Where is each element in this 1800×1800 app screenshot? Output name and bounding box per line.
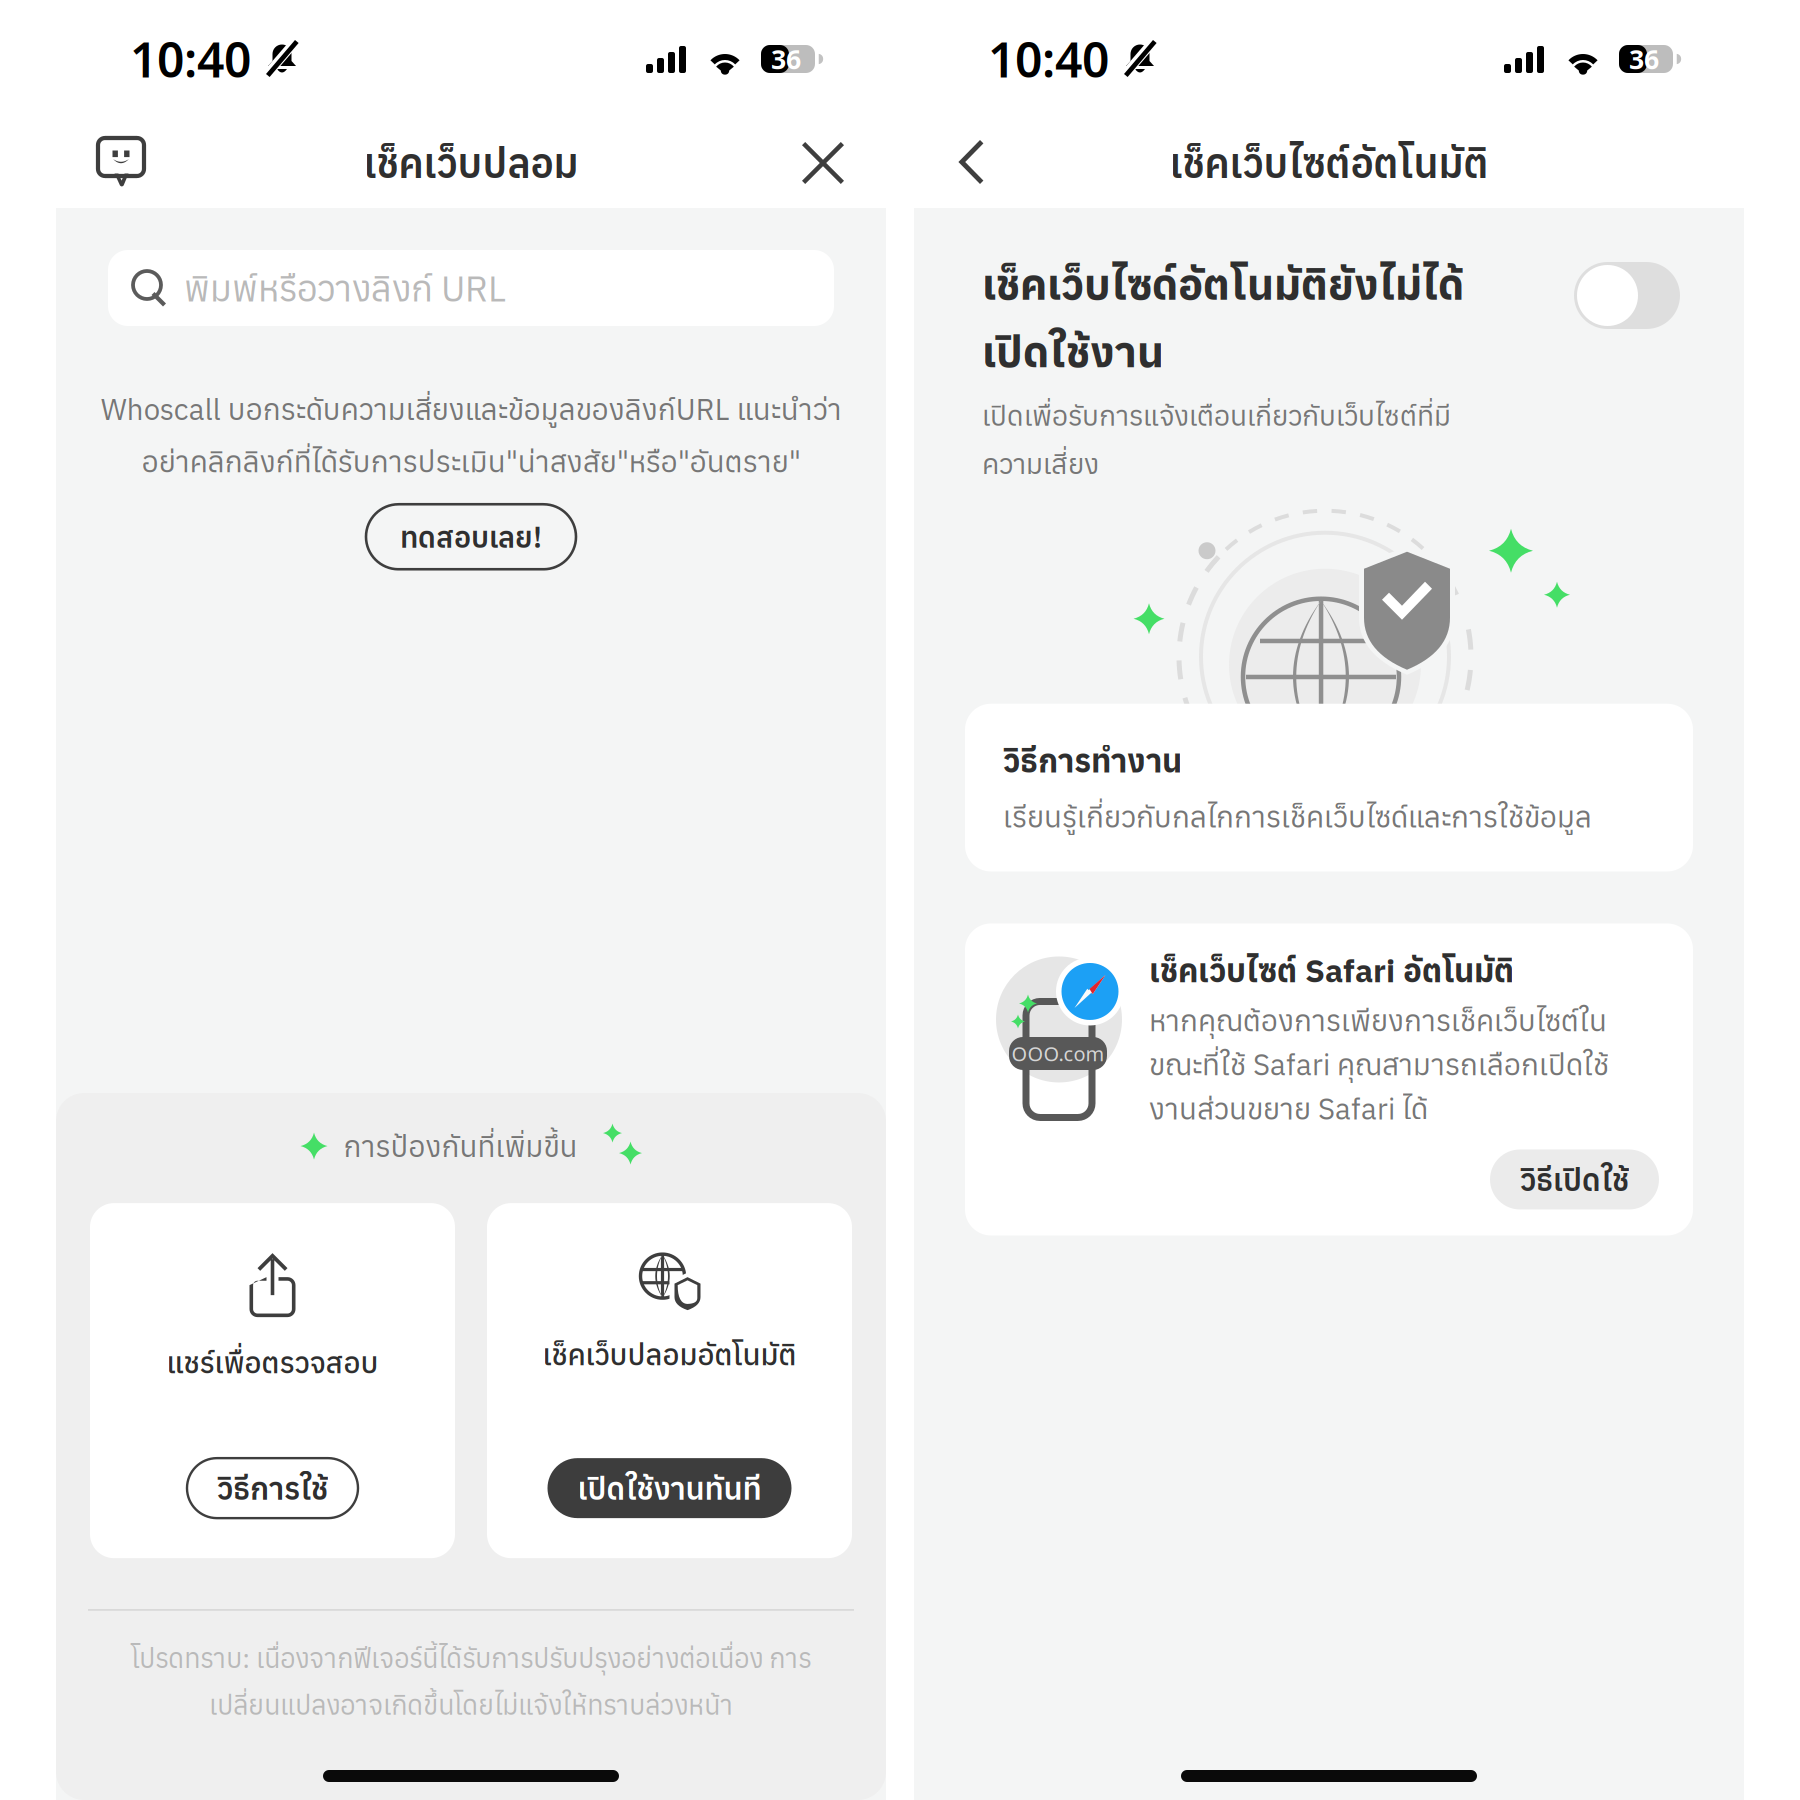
button[interactable]: ทดสอบเลย! (366, 504, 576, 569)
staticText: 36 (771, 41, 801, 77)
staticText: ทดสอบเลย! (400, 518, 542, 556)
staticText: เช็คเว็บไซต์ Safari อัตโนมัติ (1149, 949, 1514, 991)
staticText: พิมพ์หรือวางลิงก์ URL (184, 265, 506, 311)
staticText: วิธีการใช้ (217, 1468, 328, 1508)
button[interactable]: เช็คเว็บปลอมอัตโนมัติ (487, 1203, 852, 1558)
staticText: 10:40 (988, 27, 1109, 91)
staticText: วิธีการทำงาน (1003, 740, 1182, 781)
button[interactable]: Back (948, 134, 996, 192)
staticText: หากคุณต้องการเพียงการเช็คเว็บไซต์ใน ขณะท… (1149, 1001, 1609, 1127)
staticText: เช็คเว็บปลอมอัตโนมัติ (542, 1335, 796, 1373)
staticText: เช็คเว็บไซด์อัตโนมัติยังไม่ได้ เปิดใช้งา… (982, 256, 1464, 379)
staticText: วิธีเปิดใช้ (1520, 1159, 1629, 1199)
staticText: 36 (1629, 41, 1659, 77)
button[interactable]: Enable automatic website check (1574, 256, 1680, 329)
staticText: เช็คเว็บไซต์อัตโนมัติ (1169, 137, 1488, 189)
staticText: เรียนรู้เกี่ยวกับกลไกการเช็คเว็บไซด์และก… (1003, 797, 1592, 835)
staticText: Whoscall บอกระดับความเสี่ยงและข้อมูลของล… (100, 390, 841, 480)
staticText: เปิดเพื่อรับการแจ้งเตือนเกี่ยวกับเว็บไซต… (982, 397, 1451, 482)
staticText: OOO.com (1011, 1040, 1104, 1067)
button[interactable]: Feedback (90, 130, 152, 196)
staticText: เปิดใช้งานทันที (577, 1468, 761, 1508)
staticText: เช็คเว็บปลอม (363, 137, 578, 189)
button[interactable]: วิธีเปิดใช้ (1490, 1149, 1659, 1209)
button[interactable]: แชร์เพื่อตรวจสอบ (90, 1203, 455, 1558)
staticText: การป้องกันที่เพิ่มขึ้น (343, 1127, 577, 1165)
button[interactable]: พิมพ์หรือวางลิงก์ URL (108, 250, 834, 326)
staticText: แชร์เพื่อตรวจสอบ (166, 1343, 378, 1381)
staticText: โปรดทราบ: เนื่องจากฟีเจอร์นี้ได้รับการปร… (131, 1641, 811, 1722)
staticText: 10:40 (130, 27, 251, 91)
button[interactable]: Close (794, 134, 852, 192)
button[interactable]: วิธีการทำงาน (965, 704, 1693, 871)
